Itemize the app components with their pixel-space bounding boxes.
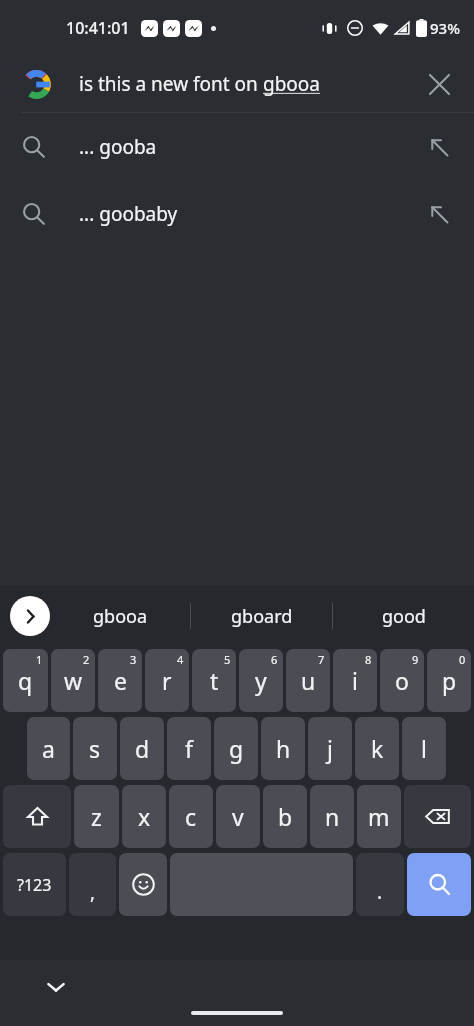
button[interactable]: ... gooba — [0, 113, 474, 180]
button[interactable]: . — [356, 853, 404, 916]
staticText: ?123 — [17, 874, 52, 896]
button[interactable]: a — [27, 717, 70, 780]
button[interactable]: o — [380, 649, 424, 712]
staticText: h — [276, 733, 291, 764]
button[interactable]: Search — [407, 853, 471, 916]
button[interactable]: n — [310, 785, 354, 848]
staticText: j — [327, 733, 333, 764]
staticText: 93% — [430, 18, 460, 38]
button[interactable]: y — [239, 649, 283, 712]
staticText: e — [114, 665, 127, 696]
staticText: p — [442, 665, 457, 696]
staticText: 3 — [130, 652, 137, 667]
staticText: o — [395, 665, 409, 696]
staticText: ... goobaby — [79, 201, 416, 227]
button[interactable]: Emoji — [119, 853, 167, 916]
button[interactable]: Insert suggestion — [416, 124, 462, 170]
staticText: i — [352, 665, 358, 696]
button[interactable]: u — [286, 649, 330, 712]
button[interactable]: g — [214, 717, 258, 780]
staticText: , — [90, 879, 96, 905]
button[interactable]: gboard — [191, 586, 332, 646]
button[interactable]: c — [169, 785, 213, 848]
staticText: ... gooba — [79, 134, 416, 160]
staticText: 10:41:01 — [66, 17, 130, 39]
staticText: k — [371, 733, 384, 764]
button[interactable]: w — [51, 649, 95, 712]
staticText: good — [382, 604, 426, 629]
staticText: 5 — [224, 652, 231, 667]
button[interactable]: Backspace — [404, 785, 471, 848]
staticText: 6 — [271, 652, 278, 667]
staticText: w — [64, 665, 83, 696]
staticText: s — [89, 733, 101, 764]
staticText: t — [210, 665, 219, 696]
staticText: n — [325, 801, 340, 832]
staticText: x — [138, 801, 151, 832]
button[interactable]: p — [427, 649, 471, 712]
button[interactable]: r — [145, 649, 189, 712]
staticText: m — [368, 801, 390, 832]
button[interactable]: f — [167, 717, 211, 780]
staticText: d — [135, 733, 150, 764]
button[interactable]: i — [333, 649, 377, 712]
staticText: 1 — [36, 652, 43, 667]
button[interactable]: h — [261, 717, 305, 780]
button[interactable]: ... goobaby — [0, 180, 474, 247]
button[interactable]: s — [73, 717, 117, 780]
button[interactable]: e — [98, 649, 142, 712]
staticText: gbooa — [93, 604, 148, 629]
button[interactable]: x — [122, 785, 166, 848]
staticText: 7 — [318, 652, 325, 667]
button[interactable]: , — [69, 853, 116, 916]
button[interactable]: v — [216, 785, 260, 848]
button[interactable]: b — [263, 785, 307, 848]
button[interactable]: Clear search — [416, 61, 462, 107]
button[interactable]: q — [3, 649, 48, 712]
staticText: a — [42, 733, 55, 764]
button[interactable]: ?123 — [3, 853, 66, 916]
staticText: v — [232, 801, 244, 832]
staticText: 2 — [83, 652, 90, 667]
button[interactable]: m — [357, 785, 401, 848]
staticText: gboard — [231, 604, 293, 629]
button[interactable]: More suggestions — [10, 596, 50, 636]
button[interactable]: is this a new font on — [0, 56, 474, 112]
staticText: g — [229, 733, 244, 764]
staticText: b — [278, 801, 293, 832]
staticText: q — [18, 665, 33, 696]
button[interactable]: Insert suggestion — [416, 191, 462, 237]
staticText: f — [185, 733, 193, 764]
button[interactable]: z — [74, 785, 119, 848]
staticText: gbooa — [263, 71, 321, 97]
staticText: 9 — [412, 652, 419, 667]
staticText: l — [421, 733, 427, 764]
button[interactable]: t — [192, 649, 236, 712]
button[interactable]: l — [402, 717, 446, 780]
staticText: y — [255, 665, 267, 696]
button[interactable]: Hide keyboard — [34, 965, 78, 1009]
button[interactable]: j — [308, 717, 352, 780]
button[interactable]: Shift — [3, 785, 71, 848]
staticText: . — [377, 879, 383, 905]
staticText: is this a new font on — [79, 71, 263, 97]
button[interactable]: k — [355, 717, 399, 780]
staticText: u — [301, 665, 316, 696]
staticText: 8 — [365, 652, 372, 667]
staticText: r — [162, 665, 172, 696]
staticText: 4 — [177, 652, 184, 667]
staticText: z — [91, 801, 102, 832]
button[interactable]: d — [120, 717, 164, 780]
button[interactable]: good — [333, 586, 474, 646]
staticText: c — [185, 801, 197, 832]
staticText: 0 — [459, 652, 466, 667]
button[interactable]: gbooa — [50, 586, 190, 646]
